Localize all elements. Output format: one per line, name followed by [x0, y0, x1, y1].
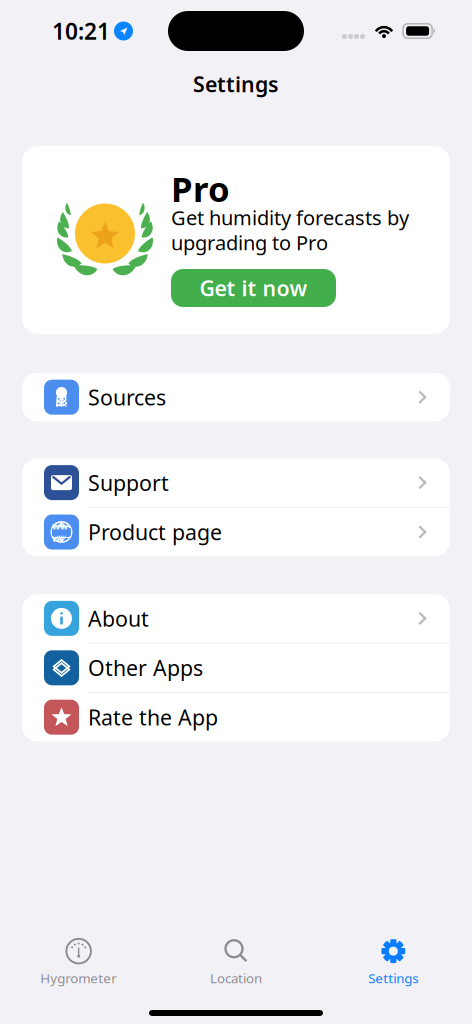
- staticText: 10:21: [52, 16, 110, 46]
- staticText: Support: [88, 468, 169, 497]
- staticText: Get humidity forecasts by: [171, 204, 409, 231]
- button[interactable]: Hygrometer: [0, 937, 157, 987]
- button[interactable]: About: [22, 594, 450, 643]
- button[interactable]: Location: [157, 937, 315, 987]
- staticText: Hygrometer: [40, 969, 117, 987]
- staticText: Settings: [368, 969, 418, 987]
- staticText: Rate the App: [88, 703, 218, 731]
- staticText: Settings: [193, 70, 279, 98]
- button[interactable]: Settings: [315, 937, 472, 987]
- staticText: Product page: [88, 518, 222, 546]
- staticText: About: [88, 604, 149, 632]
- button[interactable]: www: [22, 508, 450, 556]
- staticText: Pro: [171, 165, 230, 211]
- button[interactable]: Rate the App: [22, 693, 450, 741]
- staticText: Other Apps: [88, 654, 203, 682]
- button[interactable]: Sources: [22, 373, 450, 421]
- button[interactable]: Get it now: [171, 269, 336, 307]
- staticText: www: [52, 520, 71, 544]
- staticText: Sources: [88, 383, 166, 411]
- button[interactable]: Support: [22, 458, 450, 507]
- staticText: Get it now: [199, 274, 307, 302]
- button[interactable]: Other Apps: [22, 644, 450, 692]
- staticText: Location: [210, 969, 262, 987]
- staticText: upgrading to Pro: [171, 229, 328, 256]
